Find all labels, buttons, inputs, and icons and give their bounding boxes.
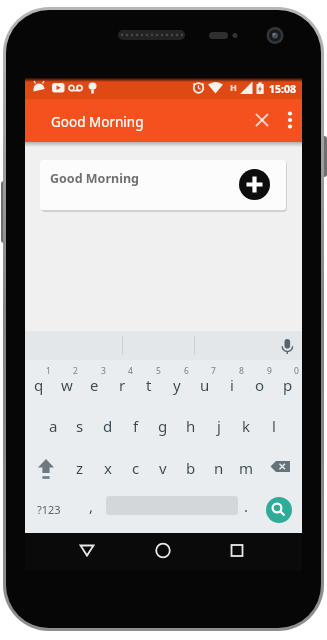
staticText: 5: [156, 365, 161, 377]
staticText: 15:08: [269, 82, 296, 96]
staticText: 7: [211, 365, 216, 377]
button[interactable]: ?123: [33, 497, 65, 521]
staticText: p: [283, 375, 293, 395]
staticText: u: [200, 375, 210, 395]
button[interactable]: [31, 452, 61, 484]
staticText: d: [103, 416, 113, 436]
staticText: b: [186, 458, 196, 478]
button[interactable]: [239, 169, 270, 200]
button[interactable]: k: [230, 414, 262, 438]
staticText: a: [49, 416, 58, 436]
button[interactable]: [266, 452, 296, 482]
staticText: 0: [294, 365, 299, 377]
button[interactable]: .: [230, 494, 262, 518]
staticText: ?123: [37, 502, 61, 517]
staticText: m: [239, 458, 254, 478]
staticText: j: [217, 416, 221, 436]
button[interactable]: ,: [75, 494, 107, 518]
staticText: r: [119, 375, 126, 395]
staticText: e: [90, 375, 99, 395]
button[interactable]: o: [244, 373, 276, 397]
button[interactable]: [266, 497, 292, 523]
staticText: f: [133, 416, 139, 436]
staticText: q: [34, 375, 44, 395]
staticText: o: [255, 375, 265, 395]
button[interactable]: w: [51, 373, 83, 397]
button[interactable]: f: [120, 414, 152, 438]
button[interactable]: r: [106, 373, 138, 397]
staticText: h: [186, 416, 196, 436]
button[interactable]: y: [161, 373, 193, 397]
staticText: 3: [101, 365, 106, 377]
button[interactable]: [280, 108, 300, 132]
staticText: v: [159, 458, 167, 478]
button[interactable]: h: [175, 414, 207, 438]
button[interactable]: [74, 537, 100, 563]
button[interactable]: l: [258, 414, 290, 438]
button[interactable]: p: [272, 373, 304, 397]
staticText: t: [146, 375, 152, 395]
button[interactable]: u: [189, 373, 221, 397]
button[interactable]: g: [147, 414, 179, 438]
button[interactable]: i: [216, 373, 248, 397]
staticText: x: [104, 458, 112, 478]
button[interactable]: n: [203, 456, 235, 480]
button[interactable]: [40, 160, 286, 210]
staticText: 1: [46, 365, 51, 377]
button[interactable]: t: [133, 373, 165, 397]
staticText: c: [132, 458, 140, 478]
staticText: Good Morning: [51, 113, 144, 131]
button[interactable]: c: [120, 456, 152, 480]
button[interactable]: e: [78, 373, 110, 397]
button[interactable]: d: [92, 414, 124, 438]
staticText: y: [173, 375, 181, 395]
staticText: ,: [89, 496, 94, 516]
button[interactable]: q: [23, 373, 55, 397]
button[interactable]: a: [37, 414, 69, 438]
staticText: 6: [184, 365, 189, 377]
button[interactable]: [224, 537, 250, 563]
button[interactable]: [150, 537, 176, 563]
staticText: w: [61, 375, 73, 395]
button[interactable]: z: [64, 456, 96, 480]
button[interactable]: x: [92, 456, 124, 480]
staticText: 2: [73, 365, 78, 377]
staticText: k: [242, 416, 251, 436]
staticText: i: [230, 375, 234, 395]
button[interactable]: v: [147, 456, 179, 480]
staticText: 4: [128, 365, 133, 377]
staticText: g: [158, 416, 168, 436]
staticText: z: [76, 458, 84, 478]
staticText: .: [244, 496, 249, 516]
button[interactable]: j: [203, 414, 235, 438]
staticText: l: [272, 416, 276, 436]
staticText: 9: [267, 365, 272, 377]
button[interactable]: b: [175, 456, 207, 480]
staticText: H: [230, 81, 237, 93]
staticText: Good Morning: [50, 170, 139, 187]
button[interactable]: s: [64, 414, 96, 438]
staticText: 8: [239, 365, 244, 377]
staticText: s: [76, 416, 84, 436]
button[interactable]: m: [230, 456, 262, 480]
button[interactable]: [250, 108, 274, 132]
staticText: n: [214, 458, 224, 478]
